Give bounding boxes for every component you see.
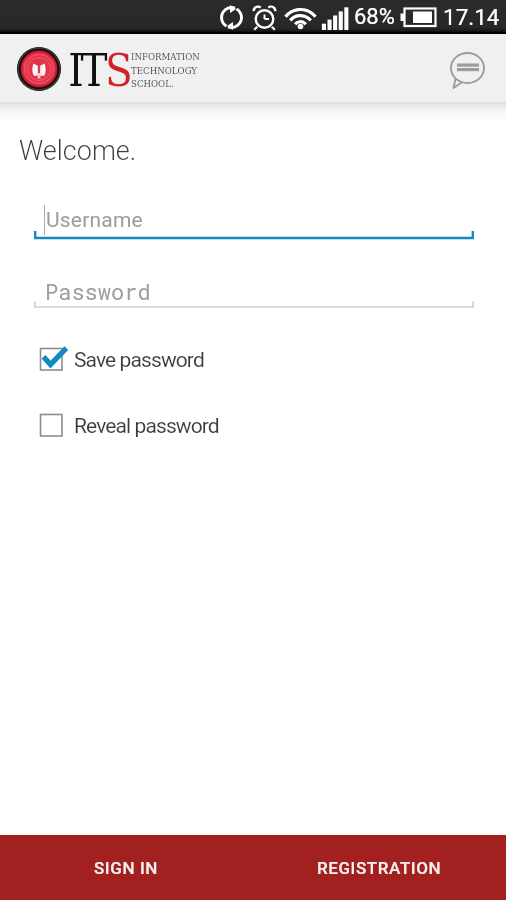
- staticText: 17.14: [443, 4, 500, 30]
- staticText: REGISTRATION: [317, 858, 442, 878]
- button[interactable]: Messages: [443, 42, 493, 92]
- staticText: Username: [46, 208, 143, 233]
- staticText: S: [105, 44, 130, 96]
- staticText: 68%: [354, 4, 395, 30]
- button[interactable]: SIGN IN: [0, 835, 253, 900]
- staticText: Welcome.: [19, 135, 137, 167]
- staticText: INFORMATION TECHNOLOGY SCHOOL.: [131, 51, 200, 89]
- staticText: Password: [45, 277, 151, 306]
- button[interactable]: Save password: [0, 340, 506, 376]
- button[interactable]: Reveal password: [0, 406, 506, 442]
- staticText: SIGN IN: [94, 858, 159, 878]
- staticText: Reveal password: [74, 414, 219, 439]
- staticText: IT: [68, 44, 105, 96]
- staticText: Save password: [74, 348, 204, 373]
- button[interactable]: REGISTRATION: [253, 835, 506, 900]
